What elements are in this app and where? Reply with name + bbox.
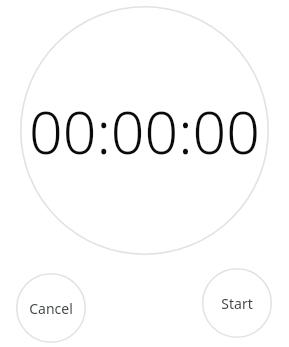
- button[interactable]: 00:00:00: [20, 6, 269, 255]
- staticText: 00:00:00: [29, 91, 260, 171]
- staticText: Cancel: [29, 299, 73, 318]
- button[interactable]: Start: [202, 268, 272, 338]
- button[interactable]: Cancel: [16, 273, 86, 343]
- staticText: Start: [221, 294, 253, 313]
